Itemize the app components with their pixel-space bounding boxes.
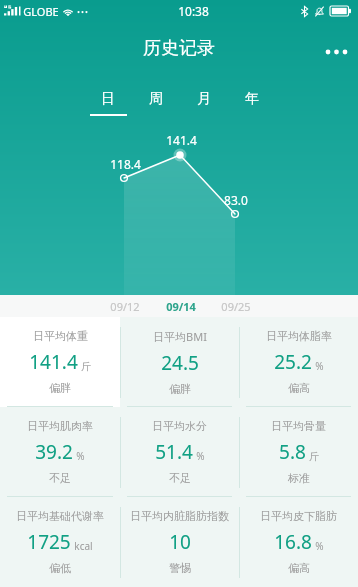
staticText: 10:38 <box>178 3 209 19</box>
staticText: 141.4 <box>166 132 197 148</box>
staticText: 25.2 <box>274 349 312 375</box>
staticText: % <box>315 539 324 553</box>
staticText: 日 <box>101 90 115 108</box>
staticText: 偏胖 <box>49 381 71 395</box>
button[interactable]: 月 <box>180 84 228 118</box>
staticText: 年 <box>245 90 259 108</box>
button[interactable]: 09/25 <box>219 299 253 314</box>
button[interactable]: 日平均BMI <box>120 317 239 407</box>
staticText: 10 <box>169 529 191 555</box>
staticText: 141.4 <box>29 349 78 375</box>
staticText: 不足 <box>169 471 191 485</box>
button[interactable]: 日平均内脏脂肪指数 <box>120 497 239 587</box>
staticText: 24.5 <box>161 350 199 376</box>
staticText: 不足 <box>49 471 71 485</box>
staticText: 日平均水分 <box>152 419 207 433</box>
button[interactable]: 日平均骨量 <box>239 407 358 497</box>
staticText: 斤 <box>309 450 319 463</box>
button[interactable]: 日 <box>84 84 132 118</box>
button[interactable]: 周 <box>132 84 180 118</box>
staticText: 日平均内脏脂肪指数 <box>130 509 229 523</box>
button[interactable]: 09/14 <box>163 299 198 314</box>
staticText: % <box>196 449 205 463</box>
staticText: 09/25 <box>221 299 251 314</box>
staticText: 51.4 <box>155 439 193 465</box>
staticText: 日平均体重 <box>33 329 88 343</box>
staticText: 09/14 <box>166 299 196 314</box>
button[interactable]: More options <box>314 30 358 74</box>
staticText: 日平均BMI <box>153 329 207 344</box>
staticText: 偏高 <box>288 381 310 395</box>
staticText: 5.8 <box>279 439 306 465</box>
staticText: 标准 <box>288 471 310 485</box>
staticText: % <box>315 359 324 373</box>
staticText: 日平均体脂率 <box>266 329 332 343</box>
staticText: 日平均皮下脂肪 <box>260 509 337 523</box>
staticText: 83.0 <box>224 192 248 208</box>
button[interactable]: 09/12 <box>108 299 142 314</box>
staticText: 偏低 <box>49 561 71 575</box>
staticText: 09/12 <box>110 299 140 314</box>
button[interactable]: 日平均皮下脂肪 <box>239 497 358 587</box>
staticText: 16.8 <box>274 529 312 555</box>
button[interactable]: 日平均体脂率 <box>239 317 358 407</box>
staticText: 39.2 <box>35 439 73 465</box>
staticText: 日平均基础代谢率 <box>16 509 104 523</box>
staticText: 偏高 <box>288 561 310 575</box>
staticText: GLOBE <box>23 4 59 19</box>
staticText: 周 <box>149 90 163 108</box>
staticText: kcal <box>74 539 93 553</box>
button[interactable]: 年 <box>228 84 276 118</box>
staticText: 日平均骨量 <box>271 419 326 433</box>
staticText: 斤 <box>81 360 91 373</box>
button[interactable]: 日平均肌肉率 <box>0 407 120 497</box>
button[interactable]: 日平均水分 <box>120 407 239 497</box>
staticText: 历史记录 <box>143 37 215 60</box>
staticText: % <box>76 449 85 463</box>
staticText: 偏胖 <box>169 382 191 396</box>
staticText: 日平均肌肉率 <box>27 419 93 433</box>
staticText: 1725 <box>27 529 71 555</box>
button[interactable]: 日平均体重 <box>0 317 120 407</box>
staticText: 月 <box>197 90 211 108</box>
staticText: 警惕 <box>169 561 191 575</box>
button[interactable]: 日平均基础代谢率 <box>0 497 120 587</box>
staticText: 118.4 <box>110 156 141 172</box>
